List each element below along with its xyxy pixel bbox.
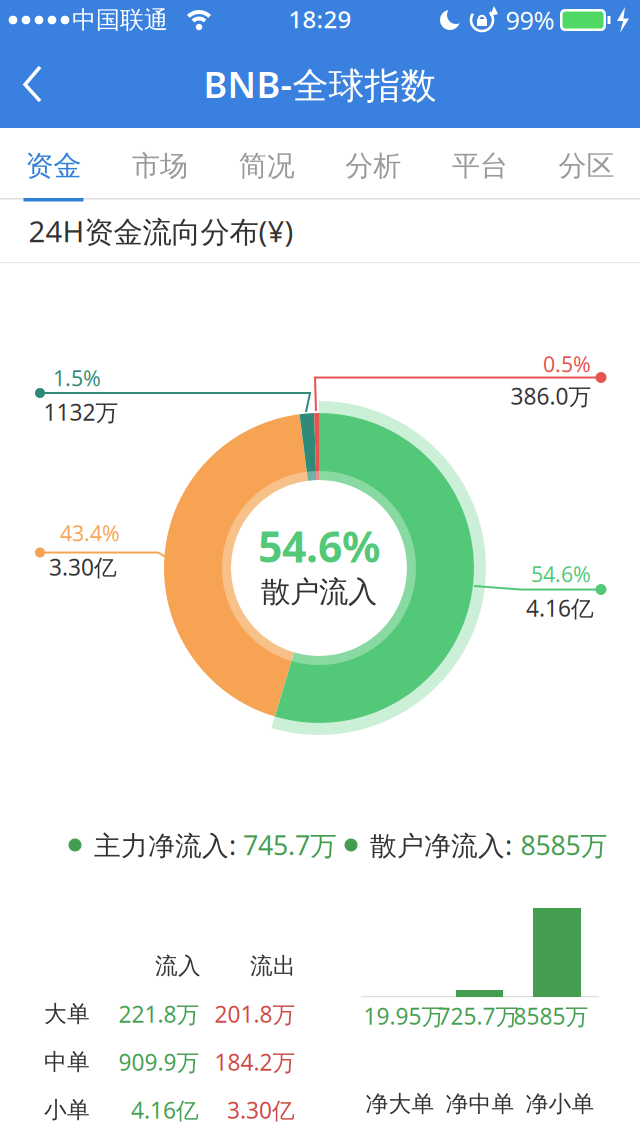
staticText: 725.7万	[437, 1001, 518, 1031]
button[interactable]: 平台	[427, 128, 533, 198]
staticText: 4.16亿	[131, 1095, 199, 1125]
staticText: 184.2万	[214, 1047, 295, 1077]
staticText: 市场	[132, 149, 188, 183]
staticText: 大单	[44, 1000, 90, 1028]
staticText: 909.9万	[118, 1047, 199, 1077]
staticText: 流入	[155, 952, 201, 980]
staticText: 3.30亿	[49, 552, 117, 582]
staticText: 54.6%	[258, 518, 380, 574]
staticText: 净中单	[445, 1090, 514, 1118]
staticText: 18:29	[288, 3, 351, 35]
staticText: 散户净流入:	[370, 827, 512, 863]
button[interactable]: 分析	[320, 128, 427, 198]
staticText: 净小单	[525, 1090, 594, 1118]
staticText: 54.6%	[531, 560, 591, 588]
staticText: 中单	[44, 1048, 90, 1076]
staticText: 0.5%	[543, 350, 591, 378]
staticText: 1132万	[43, 397, 118, 427]
button[interactable]: 分区	[533, 128, 640, 198]
staticText: 简况	[239, 149, 295, 183]
staticText: 43.4%	[60, 519, 120, 547]
staticText: 99%	[505, 3, 554, 37]
button[interactable]: 简况	[213, 128, 320, 198]
staticText: 221.8万	[118, 999, 199, 1029]
staticText: 745.7万	[243, 827, 337, 863]
staticText: 3.30亿	[227, 1095, 295, 1125]
staticText: BNB-全球指数	[203, 60, 436, 108]
staticText: 19.95万	[363, 1001, 444, 1031]
staticText: 分区	[558, 149, 614, 183]
staticText: 资金	[25, 149, 81, 183]
staticText: 386.0万	[510, 381, 591, 411]
staticText: 1.5%	[53, 364, 101, 392]
staticText: 流出	[250, 952, 296, 980]
button[interactable]: 市场	[107, 128, 213, 198]
staticText: 201.8万	[214, 999, 295, 1029]
button[interactable]: 资金	[0, 128, 107, 198]
staticText: 平台	[452, 149, 508, 183]
staticText: 净大单	[365, 1090, 434, 1118]
staticText: 8585万	[520, 827, 607, 863]
staticText: 主力净流入:	[94, 827, 236, 863]
staticText: 中国联通	[72, 5, 168, 35]
staticText: 4.16亿	[526, 593, 594, 623]
button[interactable]: Back	[0, 40, 64, 128]
staticText: 分析	[345, 149, 401, 183]
staticText: 小单	[44, 1096, 90, 1124]
staticText: 24H资金流向分布(¥)	[28, 211, 293, 250]
staticText: 8585万	[513, 1001, 588, 1031]
staticText: 散户流入	[261, 574, 377, 610]
